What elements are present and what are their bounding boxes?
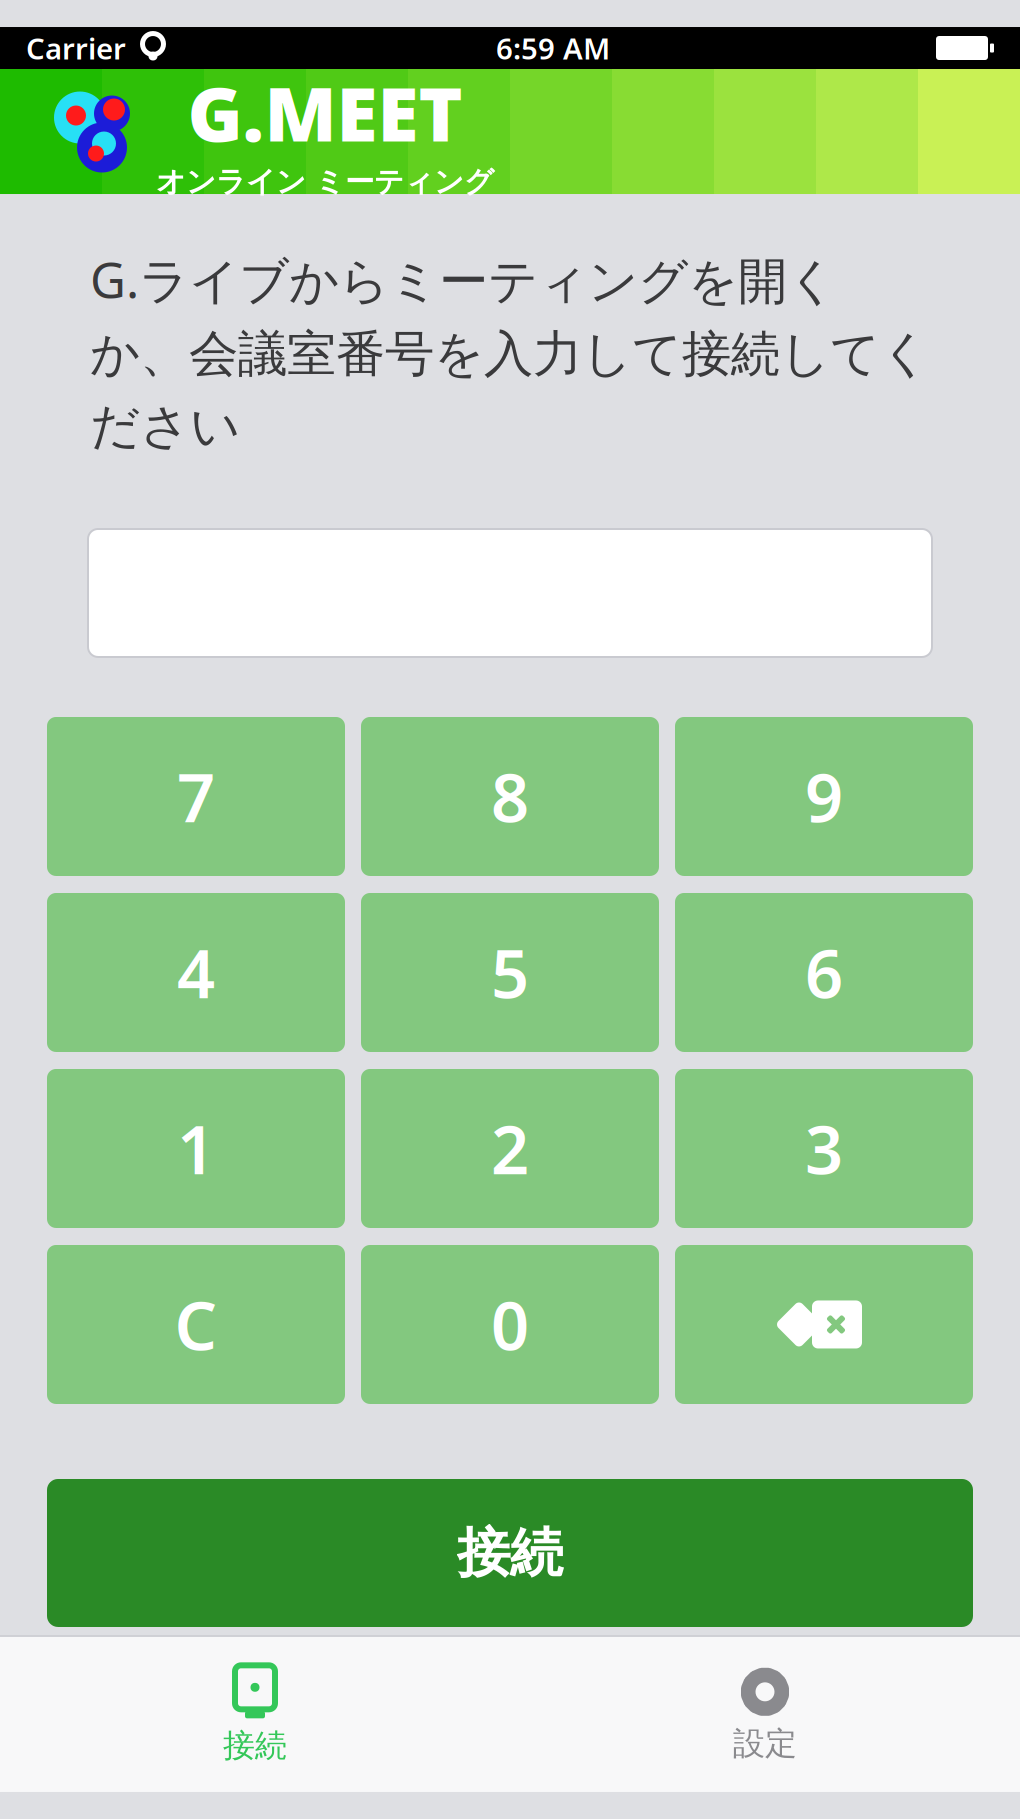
button[interactable]: 接続: [0, 1652, 510, 1777]
staticText: 1: [177, 1104, 215, 1193]
staticText: 5: [491, 928, 529, 1017]
staticText: 4: [177, 928, 215, 1017]
staticText: オンライン ミーティング: [156, 164, 494, 200]
staticText: C: [174, 1280, 217, 1369]
staticText: 6:59 AM: [496, 28, 610, 67]
button[interactable]: 4: [47, 893, 345, 1052]
staticText: 接続: [457, 1520, 563, 1586]
button[interactable]: 7: [47, 717, 345, 876]
staticText: 2: [491, 1104, 529, 1193]
button[interactable]: 8: [361, 717, 659, 876]
staticText: 接続: [223, 1726, 287, 1765]
button[interactable]: Delete: [675, 1245, 973, 1404]
staticText: 0: [491, 1280, 529, 1369]
button[interactable]: 9: [675, 717, 973, 876]
button[interactable]: 5: [361, 893, 659, 1052]
staticText: 設定: [733, 1724, 797, 1763]
staticText: 6: [805, 928, 843, 1017]
button[interactable]: 1: [47, 1069, 345, 1228]
button[interactable]: C: [47, 1245, 345, 1404]
staticText: Carrier: [26, 28, 126, 67]
staticText: 3: [805, 1104, 843, 1193]
button[interactable]: 3: [675, 1069, 973, 1228]
staticText: 9: [805, 752, 843, 841]
staticText: 7: [177, 752, 215, 841]
staticText: G.MEET: [187, 63, 462, 162]
button[interactable]: 6: [675, 893, 973, 1052]
button[interactable]: 0: [361, 1245, 659, 1404]
staticText: 8: [491, 752, 529, 841]
button[interactable]: 2: [361, 1069, 659, 1228]
button[interactable]: 設定: [510, 1654, 1020, 1775]
button[interactable]: 接続: [47, 1479, 973, 1627]
staticText: G.ライブからミーティングを開くか、会議室番号を入力して接続してください: [90, 246, 930, 457]
